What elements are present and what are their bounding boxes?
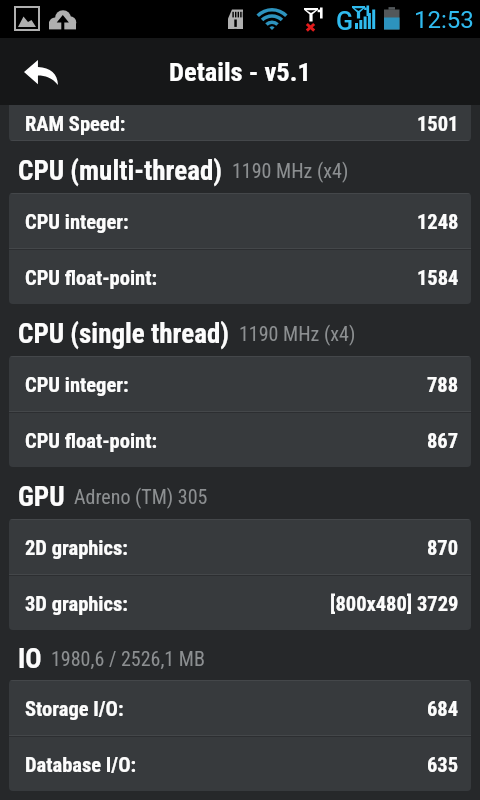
staticText: 1190 MHz (x4)	[232, 159, 349, 182]
staticText: 635	[427, 753, 459, 777]
staticText: 3D graphics:	[25, 592, 128, 616]
staticText: Storage I/O:	[25, 697, 124, 721]
staticText: IO	[18, 643, 42, 675]
button[interactable]: RAM Speed:	[9, 105, 471, 140]
button[interactable]: Back	[8, 38, 72, 105]
staticText: Adreno (TM) 305	[74, 485, 208, 508]
staticText: 1190 MHz (x4)	[239, 322, 356, 345]
button[interactable]: CPU float-point:	[9, 413, 471, 467]
staticText: G	[336, 7, 354, 36]
button[interactable]: 3D graphics:	[9, 576, 471, 630]
staticText: CPU integer:	[25, 373, 129, 397]
button[interactable]: Storage I/O:	[9, 681, 471, 735]
staticText: 788	[427, 373, 459, 397]
button[interactable]: CPU integer:	[9, 194, 471, 248]
staticText: Database I/O:	[25, 753, 137, 777]
staticText: CPU float-point:	[25, 429, 158, 453]
staticText: 1248	[417, 210, 459, 234]
staticText: 1501	[417, 112, 459, 136]
button[interactable]: Database I/O:	[9, 737, 471, 791]
staticText: 867	[427, 429, 459, 453]
staticText: [800x480] 3729	[330, 592, 459, 616]
staticText: 684	[427, 697, 459, 721]
staticText: 1584	[417, 266, 459, 290]
staticText: CPU float-point:	[25, 266, 158, 290]
button[interactable]: 2D graphics:	[9, 520, 471, 574]
button[interactable]: CPU integer:	[9, 357, 471, 411]
staticText: Details - v5.1	[169, 56, 311, 87]
button[interactable]: CPU float-point:	[9, 250, 471, 304]
staticText: 2D graphics:	[25, 536, 128, 560]
staticText: GPU	[18, 481, 65, 513]
staticText: CPU integer:	[25, 210, 129, 234]
staticText: RAM Speed:	[25, 112, 126, 136]
staticText: 1980,6 / 2526,1 MB	[51, 647, 205, 670]
staticText: 12:53	[414, 6, 474, 34]
staticText: 870	[427, 536, 459, 560]
staticText: CPU (multi-thread)	[18, 155, 223, 187]
staticText: CPU (single thread)	[18, 318, 230, 350]
